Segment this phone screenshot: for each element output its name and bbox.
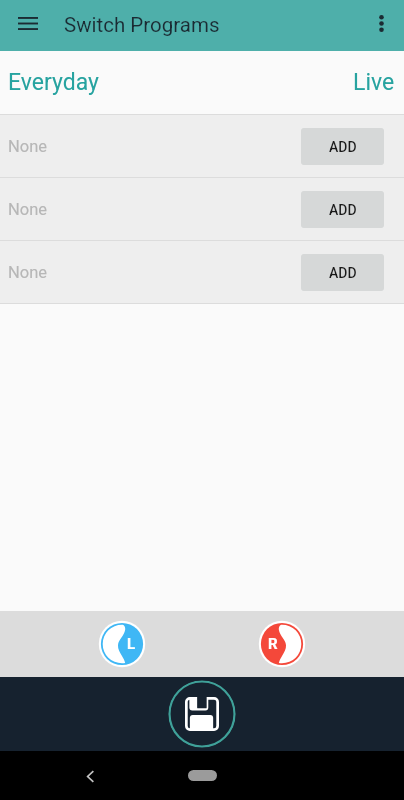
staticText: ADD: [329, 139, 357, 155]
staticText: Live: [353, 69, 395, 96]
staticText: Everyday: [8, 69, 99, 96]
button[interactable]: Save program: [168, 680, 236, 748]
button[interactable]: Right hearing device: [257, 619, 307, 669]
button[interactable]: ADD: [301, 254, 384, 291]
button[interactable]: More options: [361, 3, 401, 43]
staticText: ADD: [329, 202, 357, 218]
button[interactable]: Left hearing device: [97, 619, 147, 669]
button[interactable]: None: [0, 178, 404, 240]
staticText: None: [8, 137, 48, 156]
button[interactable]: Home: [188, 770, 217, 781]
staticText: Switch Programs: [64, 13, 220, 37]
staticText: None: [8, 200, 48, 219]
button[interactable]: Open navigation menu: [8, 3, 48, 43]
button[interactable]: Live: [341, 60, 404, 105]
staticText: ADD: [329, 265, 357, 281]
button[interactable]: None: [0, 241, 404, 303]
button[interactable]: Everyday: [0, 60, 111, 105]
button[interactable]: None: [0, 115, 404, 177]
button[interactable]: Back: [75, 761, 105, 791]
staticText: R: [268, 635, 278, 653]
button[interactable]: ADD: [301, 128, 384, 165]
button[interactable]: ADD: [301, 191, 384, 228]
staticText: None: [8, 263, 48, 282]
staticText: L: [127, 635, 136, 653]
